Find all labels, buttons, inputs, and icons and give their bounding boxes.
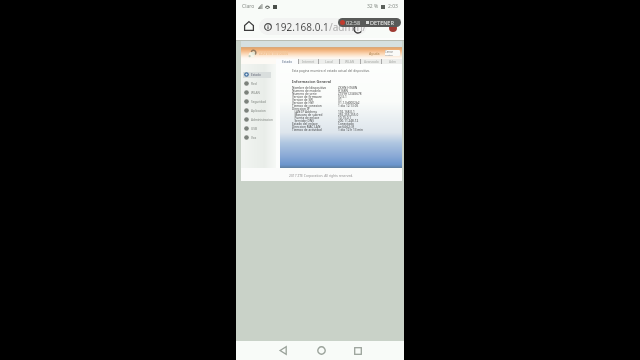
button[interactable]: Reload (353, 24, 363, 34)
staticText: 1 dia 12 h 13 min (338, 128, 364, 131)
button[interactable]: Seguridad (241, 97, 276, 106)
button[interactable]: Estado (241, 70, 276, 79)
staticText: Version de SW (292, 98, 338, 101)
staticText: Aplicacion (251, 109, 266, 113)
button[interactable]: Voz (241, 133, 276, 142)
staticText: Estado del enlace (292, 122, 338, 125)
staticText: Tiempo de actividad (292, 128, 338, 131)
staticText: Local (325, 60, 333, 64)
staticText: Nombre del dispositivo (292, 86, 338, 89)
staticText: Ayuda (369, 51, 380, 56)
staticText: Adm (389, 60, 396, 64)
staticText: Seguridad (251, 100, 266, 104)
staticText: Direccion IP (292, 107, 338, 110)
button[interactable]: Adm (382, 59, 402, 64)
staticText: 1 dia 12:13:05 (338, 104, 359, 107)
staticText: Tiempo de conexion (292, 104, 338, 107)
staticText: 255.255.255.0 (338, 113, 359, 116)
staticText: Claro (242, 3, 255, 10)
staticText: Version de firmware (292, 95, 338, 98)
staticText: Estado (251, 73, 261, 77)
staticText: Version de HW (292, 101, 338, 104)
staticText: Numero de modelo (292, 89, 338, 92)
button[interactable]: Internet (299, 59, 318, 64)
button[interactable]: Estado (276, 59, 298, 64)
staticText: Voz (251, 136, 257, 140)
button[interactable]: Home (309, 341, 333, 360)
button[interactable]: Avanzado (361, 59, 381, 64)
staticText: Esta pagina muestra el estado actual del… (292, 69, 371, 73)
staticText: Puerta de enlace (292, 116, 338, 119)
button[interactable]: Recents (346, 341, 370, 360)
staticText: DETENER (370, 19, 394, 26)
staticText: Internet (302, 60, 315, 64)
staticText: Servidor DNS (292, 119, 338, 122)
staticText: Informacion General (292, 79, 332, 84)
button[interactable]: WLAN (241, 88, 276, 97)
staticText: Estado (282, 60, 293, 64)
button[interactable]: Administracion (241, 115, 276, 124)
button[interactable]: Cerrar sesion (385, 50, 400, 56)
button[interactable]: 192.168.0.1 (259, 18, 367, 35)
staticText: LAN IP Address (292, 110, 338, 113)
staticText: Direccion MAC LAN (292, 125, 338, 128)
staticText: V2.5.1 (338, 95, 347, 98)
staticText: 192.168.0.1 (338, 110, 355, 113)
staticText: USB (251, 127, 257, 131)
button[interactable]: Back (271, 341, 295, 360)
button[interactable]: Home (242, 19, 256, 33)
staticText: ZXHN H168N (338, 86, 358, 89)
staticText: WLAN (345, 60, 355, 64)
staticText: 192.168.0.1 (275, 20, 329, 34)
staticText: V1 (338, 98, 342, 101)
staticText: /admin/cdb (329, 20, 367, 34)
staticText: Mascara de subred (292, 113, 338, 116)
button[interactable]: Local (319, 59, 339, 64)
button[interactable]: Red (241, 79, 276, 88)
staticText: WLAN (251, 91, 260, 95)
button[interactable]: Tabs (389, 24, 397, 32)
staticText: Conectado (338, 122, 354, 125)
staticText: 200.11.248.12 (338, 119, 359, 122)
staticText: 2017 ZTE Corporation. All rights reserve… (289, 173, 354, 177)
staticText: ac:64:62:3f (338, 125, 354, 128)
staticText: Avanzado (364, 60, 379, 64)
button[interactable]: 02:58 (338, 18, 401, 27)
staticText: 10.15.0.1 (338, 116, 352, 119)
button[interactable]: USB (241, 124, 276, 133)
staticText: 32 % (367, 3, 379, 10)
staticText: ZXHN H168N (259, 50, 289, 56)
staticText: H168N (338, 89, 349, 92)
staticText: V1.1.0d0002b2 (338, 101, 360, 104)
staticText: 02:58 (346, 19, 361, 26)
button[interactable]: WLAN (340, 59, 360, 64)
staticText: ZTEYH12345678 (338, 92, 362, 95)
staticText: Cerrar sesion (385, 50, 400, 56)
staticText: Red (251, 82, 257, 86)
staticText: Administracion (251, 118, 273, 122)
button[interactable]: Aplicacion (241, 106, 276, 115)
staticText: 2:03 (388, 3, 398, 10)
staticText: Numero de serie (292, 92, 338, 95)
